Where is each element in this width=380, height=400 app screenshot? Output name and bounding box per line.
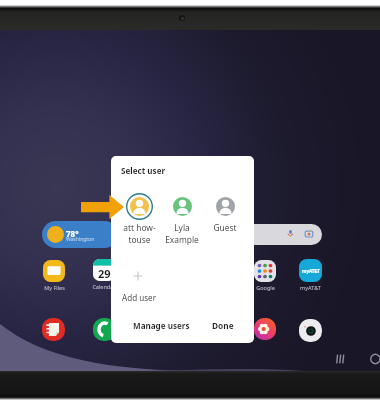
staticText: 78° xyxy=(66,228,79,239)
button[interactable]: Manage users xyxy=(130,318,193,333)
staticText: My Files xyxy=(44,284,65,291)
button[interactable]: Guest xyxy=(203,193,247,233)
button[interactable]: Add user xyxy=(119,290,160,305)
button[interactable]: 29 xyxy=(87,259,121,290)
staticText: myAT&T xyxy=(300,284,321,291)
staticText: 29 xyxy=(98,266,111,281)
staticText: Calendar xyxy=(92,283,116,290)
button[interactable]: Search xyxy=(238,224,322,245)
button[interactable]: Gallery xyxy=(254,318,276,340)
staticText: Done xyxy=(212,320,234,331)
staticText: Google xyxy=(256,284,275,291)
staticText: Add user xyxy=(122,292,157,303)
button[interactable]: Phone xyxy=(93,318,116,341)
button[interactable]: myAT&T xyxy=(293,259,328,291)
other: Google Lens xyxy=(304,229,314,239)
staticText: Select user xyxy=(121,165,166,176)
button[interactable]: Samsung Notes xyxy=(42,318,65,341)
button[interactable]: Done xyxy=(209,318,237,333)
button[interactable]: Add user xyxy=(127,265,149,287)
staticText: Washington xyxy=(66,236,95,243)
other: Voice search xyxy=(286,229,295,238)
staticText: Manage users xyxy=(133,320,190,331)
staticText: att how- touse xyxy=(123,222,156,246)
button[interactable]: Camera xyxy=(299,319,322,342)
staticText: myAT&T xyxy=(302,268,320,274)
button[interactable]: Weather xyxy=(42,221,118,248)
button[interactable]: Recents xyxy=(332,350,350,368)
button[interactable]: Google xyxy=(248,260,282,291)
button[interactable]: Lyla Example xyxy=(160,193,204,246)
staticText: Guest xyxy=(213,222,237,233)
button[interactable]: Home xyxy=(366,350,380,368)
button[interactable]: My Files xyxy=(37,260,71,291)
button[interactable]: att how- touse xyxy=(117,193,161,246)
staticText: Lyla Example xyxy=(165,222,199,246)
